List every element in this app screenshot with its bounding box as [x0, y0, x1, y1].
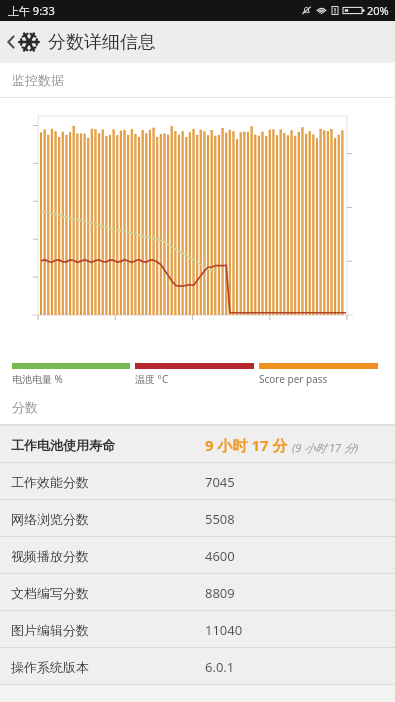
staticText: 图片编辑分数: [11, 622, 89, 638]
staticText: 监控数据: [12, 72, 64, 88]
staticText: 网络浏览分数: [11, 511, 89, 527]
button[interactable]: 操作系统版本: [0, 648, 395, 685]
button[interactable]: 视频播放分数: [0, 537, 395, 574]
staticText: 7045: [205, 473, 235, 491]
staticText: 11040: [205, 621, 243, 639]
staticText: 8809: [205, 584, 235, 602]
button[interactable]: Back: [0, 21, 395, 63]
button[interactable]: 工作效能分数: [0, 463, 395, 500]
staticText: 操作系统版本: [11, 659, 89, 675]
button[interactable]: 网络浏览分数: [0, 500, 395, 537]
staticText: 文档编写分数: [11, 585, 89, 601]
staticText: 4600: [205, 547, 235, 565]
staticText: 工作效能分数: [11, 474, 89, 490]
staticText: 分数: [12, 399, 38, 415]
staticText: 20%: [367, 3, 389, 18]
staticText: 视频播放分数: [11, 548, 89, 564]
staticText: 上午 9:33: [8, 3, 55, 18]
button[interactable]: 图片编辑分数: [0, 611, 395, 648]
button[interactable]: 文档编写分数: [0, 574, 395, 611]
staticText: 电池电量 %: [12, 372, 63, 386]
staticText: 分数详细信息: [48, 31, 156, 54]
staticText: Score per pass: [259, 372, 328, 386]
staticText: 5508: [205, 510, 235, 528]
staticText: 温度 °C: [135, 372, 169, 386]
staticText: 9 小时 17 分: [205, 435, 288, 455]
staticText: 工作电池使用寿命: [11, 437, 115, 453]
staticText: 6.0.1: [205, 658, 235, 676]
staticText: (9 小时 17 分): [292, 440, 359, 455]
button[interactable]: 工作电池使用寿命: [0, 426, 395, 463]
